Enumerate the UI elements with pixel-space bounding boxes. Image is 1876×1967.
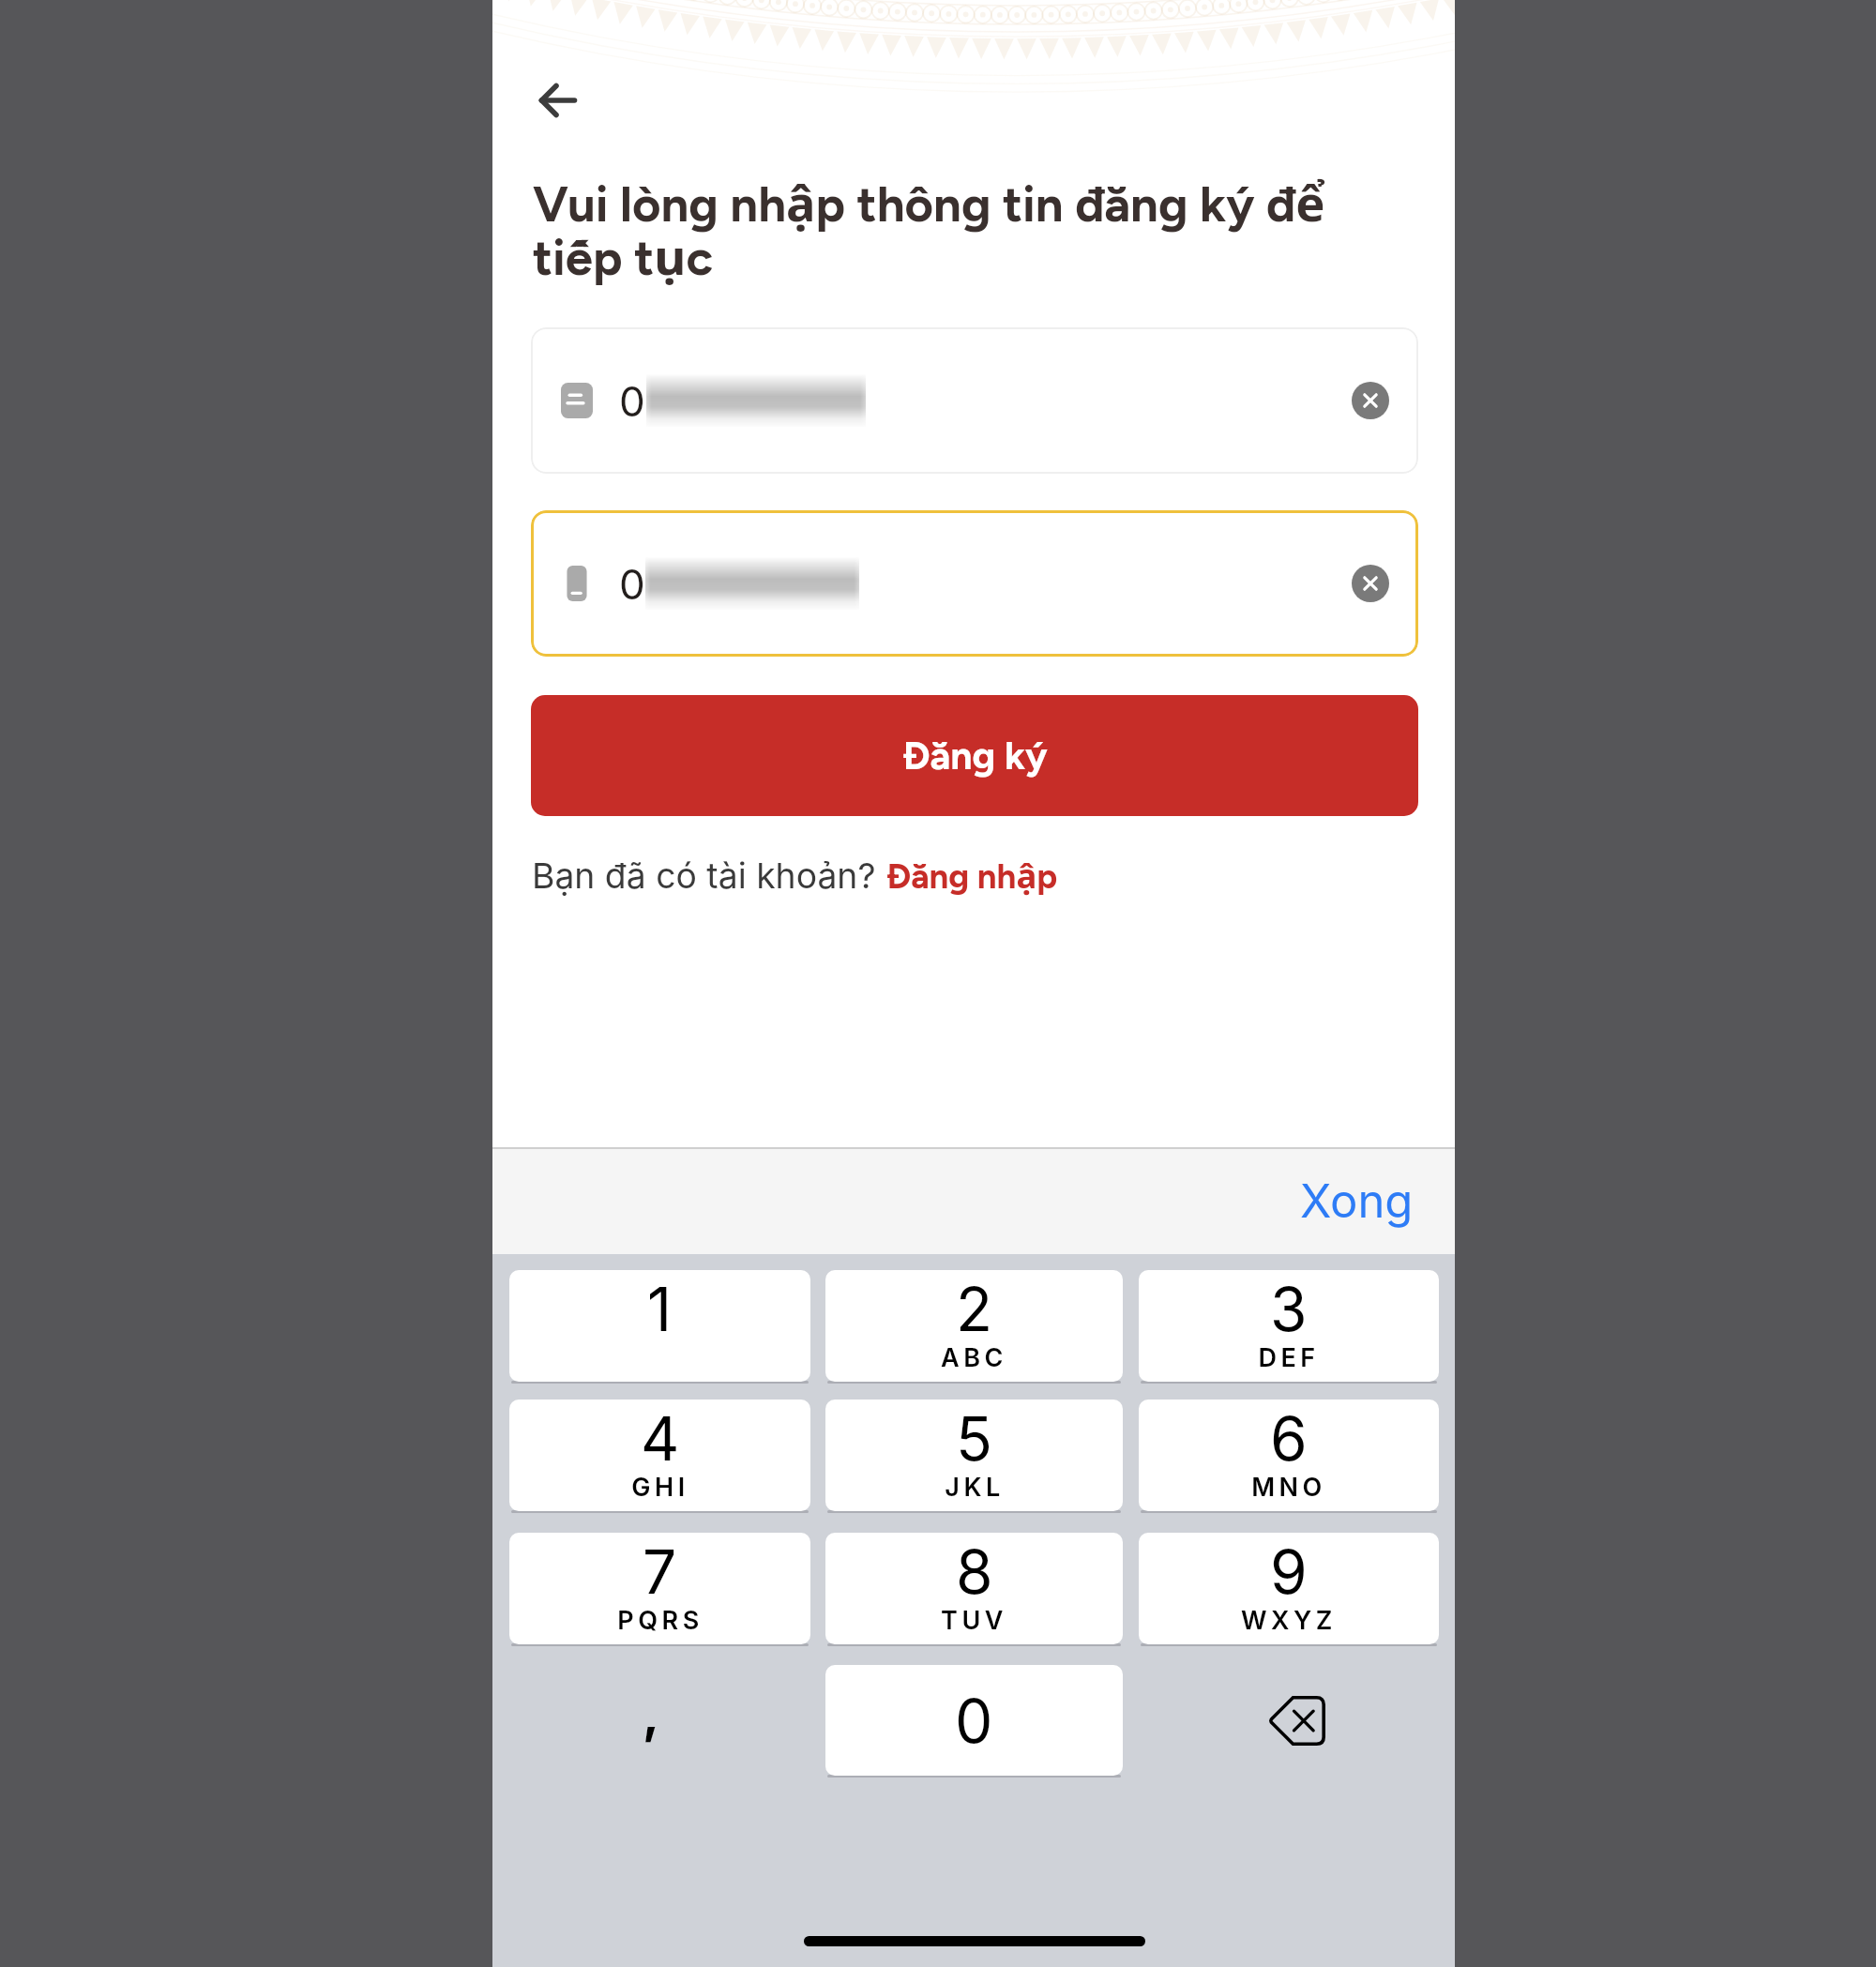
staticText: MNO (1251, 1472, 1326, 1503)
button[interactable]: Xong (1300, 1173, 1414, 1229)
staticText: 1 (647, 1273, 673, 1345)
staticText: 2 (956, 1273, 993, 1345)
staticText: 0 (619, 376, 645, 426)
button[interactable]: 5 (825, 1400, 1123, 1511)
button[interactable]: 4 (509, 1400, 810, 1511)
button[interactable]: 7 (509, 1533, 810, 1644)
button[interactable]: 0 (531, 510, 1418, 657)
button[interactable]: 1 (509, 1270, 810, 1382)
staticText: 0 (619, 559, 645, 609)
staticText: 9 (1270, 1536, 1308, 1608)
staticText: 5 (956, 1402, 992, 1475)
button[interactable]: Clear (1352, 565, 1389, 602)
button[interactable]: 0 (825, 1665, 1123, 1776)
button[interactable]: Đăng nhập (885, 852, 1058, 899)
button[interactable]: Backspace (1139, 1665, 1439, 1776)
staticText: 6 (1270, 1402, 1308, 1475)
staticText: WXYZ (1241, 1605, 1337, 1636)
button[interactable]: 0 (531, 327, 1418, 474)
button[interactable]: 9 (1139, 1533, 1439, 1644)
staticText: Xong (1300, 1173, 1414, 1229)
staticText: TUV (941, 1605, 1007, 1636)
staticText: DEF (1258, 1342, 1320, 1373)
staticText: 3 (1270, 1273, 1308, 1345)
staticText: , (643, 1684, 660, 1745)
staticText: JKL (945, 1472, 1005, 1503)
button[interactable]: 8 (825, 1533, 1123, 1644)
staticText: Đăng ký (901, 733, 1048, 779)
staticText: Bạn đã có tài khoản? (532, 855, 885, 897)
staticText: 8 (956, 1536, 993, 1608)
button[interactable]: Clear (1352, 382, 1389, 419)
staticText: PQRS (617, 1605, 703, 1636)
button[interactable]: , (509, 1665, 810, 1776)
button[interactable]: Đăng ký (531, 695, 1418, 816)
staticText: 4 (641, 1402, 680, 1475)
button[interactable]: 3 (1139, 1270, 1439, 1382)
staticText: 0 (955, 1685, 993, 1757)
button[interactable]: 6 (1139, 1400, 1439, 1511)
button[interactable]: 2 (825, 1270, 1123, 1382)
staticText: Đăng nhập (885, 852, 1058, 899)
button[interactable]: Back (524, 67, 592, 134)
staticText: GHI (631, 1472, 689, 1503)
staticText: Vui lòng nhập thông tin đăng ký để tiếp … (533, 169, 1349, 290)
staticText: ABC (941, 1342, 1007, 1373)
staticText: 7 (643, 1536, 677, 1608)
